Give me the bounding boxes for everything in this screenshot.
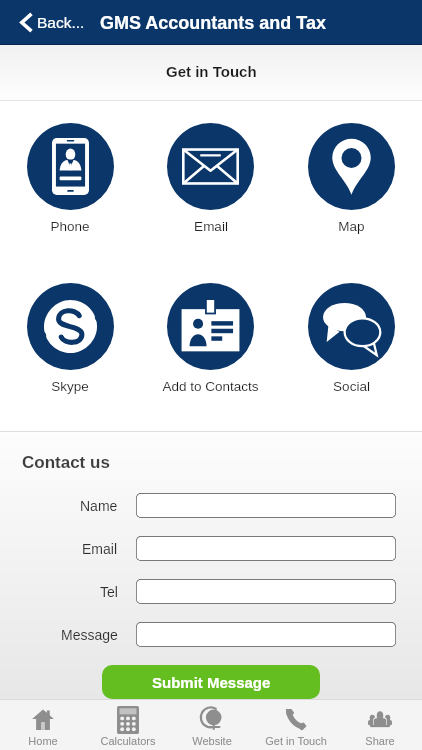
button[interactable]: Calculators bbox=[85, 700, 170, 750]
staticText: Contact us bbox=[22, 453, 110, 472]
staticText: Map bbox=[338, 219, 365, 234]
button[interactable]: Share bbox=[338, 700, 422, 750]
staticText: Submit Message bbox=[152, 674, 271, 691]
button[interactable]: Map bbox=[281, 123, 422, 234]
button[interactable] bbox=[136, 579, 396, 604]
staticText: Skype bbox=[51, 379, 89, 394]
staticText: Website bbox=[192, 735, 232, 747]
staticText: Tel bbox=[100, 584, 118, 600]
staticText: Add to Contacts bbox=[162, 379, 259, 394]
button[interactable]: Social bbox=[281, 283, 422, 394]
staticText: Email bbox=[194, 219, 228, 234]
staticText: Share bbox=[365, 735, 395, 747]
button[interactable]: Add to Contacts bbox=[140, 283, 281, 394]
button[interactable] bbox=[136, 622, 396, 647]
staticText: Message bbox=[61, 627, 118, 643]
staticText: Calculators bbox=[100, 735, 156, 747]
button[interactable]: Get in Touch bbox=[254, 700, 338, 750]
button[interactable]: Submit Message bbox=[102, 665, 320, 699]
button[interactable]: Website bbox=[170, 700, 254, 750]
button[interactable]: Home bbox=[0, 700, 85, 750]
staticText: Get in Touch bbox=[166, 63, 257, 80]
button[interactable] bbox=[136, 536, 396, 561]
staticText: Social bbox=[333, 379, 370, 394]
staticText: Home bbox=[28, 735, 58, 747]
staticText: Email bbox=[82, 541, 118, 557]
staticText: Back... bbox=[37, 14, 85, 31]
staticText: Phone bbox=[50, 219, 90, 234]
button[interactable] bbox=[136, 493, 396, 518]
staticText: Get in Touch bbox=[265, 735, 327, 747]
button[interactable]: Back... bbox=[15, 8, 90, 37]
button[interactable]: Skype bbox=[0, 283, 140, 394]
staticText: GMS Accountants and Tax bbox=[100, 13, 327, 33]
button[interactable]: Email bbox=[140, 123, 281, 234]
button[interactable]: Phone bbox=[0, 123, 140, 234]
staticText: Name bbox=[80, 498, 118, 514]
